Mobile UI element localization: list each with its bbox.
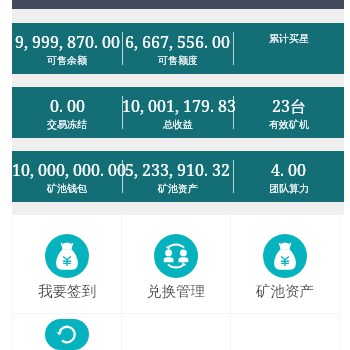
staticText: 5, 233, 910. 32 [125,159,230,181]
staticText: 0. 00 [50,95,85,117]
staticText: 累计买星 [269,32,309,45]
staticText: 团队算力 [269,182,309,195]
staticText: 可售额度 [158,54,198,67]
staticText: 矿池钱包 [47,182,87,195]
button[interactable]: 快捷入口 [13,314,121,350]
staticText: 有效矿机 [269,118,309,131]
staticText: 10, 001, 179. 83 [122,95,233,117]
button[interactable]: 累计买星 [233,23,344,74]
staticText: 6, 667, 556. 00 [125,31,230,53]
button[interactable]: 10, 001, 179. 83 [122,87,233,138]
staticText: 总收益 [163,118,193,131]
staticText: 23台 [272,95,306,117]
staticText: 兑换管理 [147,282,205,300]
button[interactable]: 4. 00 [233,151,344,202]
staticText: 9, 999, 870. 00 [15,31,120,53]
button[interactable]: 23台 [233,87,344,138]
staticText: 交易冻结 [47,118,87,131]
staticText: 4. 00 [271,159,306,181]
button[interactable]: 我要签到 [13,215,121,313]
button[interactable]: 6, 667, 556. 00 [122,23,233,74]
button[interactable]: 兑换管理 [122,215,230,313]
button[interactable]: 矿池资产 [231,215,339,313]
button[interactable]: 0. 00 [12,87,122,138]
staticText: 矿池资产 [158,182,198,195]
button[interactable]: 9, 999, 870. 00 [12,23,122,74]
staticText: 可售余额 [47,54,87,67]
staticText: 10, 000, 000. 00 [12,159,122,181]
staticText: 我要签到 [38,282,96,300]
button[interactable]: 5, 233, 910. 32 [122,151,233,202]
button[interactable]: 10, 000, 000. 00 [12,151,122,202]
staticText: 矿池资产 [256,282,314,300]
